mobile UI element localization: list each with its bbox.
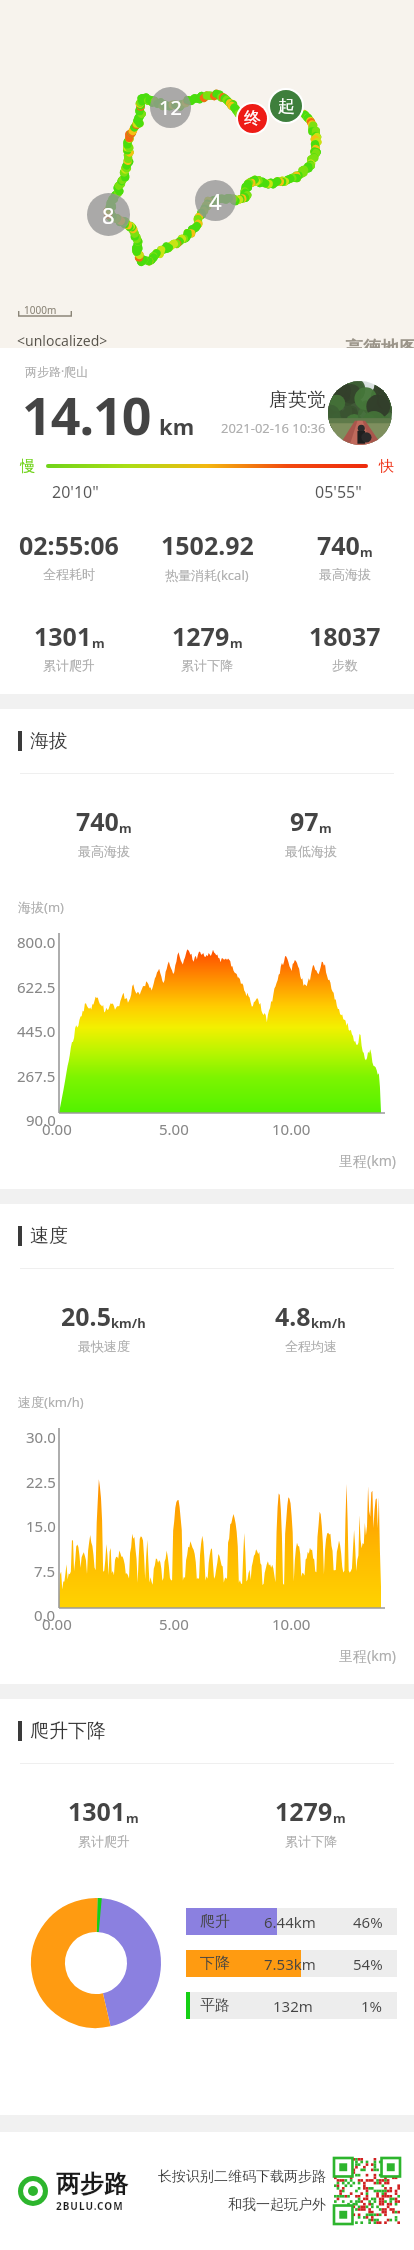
staticText: 20'10" xyxy=(52,481,99,503)
staticText: 高德地图 xyxy=(345,337,414,360)
staticText: 4 xyxy=(209,186,222,216)
staticText: 累计下降 xyxy=(285,1833,337,1849)
staticText: 里程(km) xyxy=(339,1646,396,1665)
staticText: 30.0 xyxy=(26,1427,56,1444)
staticText: 1279 xyxy=(172,619,230,653)
staticText: 800.0 xyxy=(17,932,56,949)
staticText: 2021-02-16 10:36 xyxy=(221,419,326,437)
staticText: 97 xyxy=(290,804,319,838)
staticText: 54% xyxy=(353,1954,383,1974)
staticText: 18037 xyxy=(309,619,381,653)
staticText: 速度(km/h) xyxy=(18,1393,84,1411)
staticText: 最高海拔 xyxy=(319,566,371,582)
staticText: 22.5 xyxy=(26,1472,56,1489)
staticText: m xyxy=(333,1809,346,1827)
staticText: 长按识别二维码下载两步路 xyxy=(158,2168,326,2186)
staticText: 20.5 xyxy=(61,1299,111,1333)
staticText: m xyxy=(360,543,373,561)
staticText: 爬升 xyxy=(200,1912,230,1931)
staticText: 下降 xyxy=(200,1954,230,1973)
button[interactable]: 下降 xyxy=(186,1950,397,1977)
staticText: 05'55" xyxy=(315,481,362,503)
staticText: 累计爬升 xyxy=(43,657,95,673)
staticText: 海拔(m) xyxy=(18,898,64,916)
staticText: 445.0 xyxy=(17,1021,56,1038)
staticText: 7.5 xyxy=(34,1561,56,1578)
button[interactable]: 平路 xyxy=(186,1992,397,2019)
staticText: 2BULU.COM xyxy=(56,2199,124,2213)
button[interactable]: 速度 xyxy=(18,1204,414,1268)
staticText: 6.44km xyxy=(264,1912,316,1932)
staticText: 最快速度 xyxy=(78,1338,130,1354)
staticText: 全程耗时 xyxy=(43,566,95,582)
staticText: 7.53km xyxy=(264,1954,316,1974)
button[interactable]: 终 xyxy=(238,104,267,133)
staticText: m xyxy=(319,819,332,837)
button[interactable]: User avatar xyxy=(328,381,392,445)
staticText: 10.00 xyxy=(272,1119,311,1139)
staticText: 5.00 xyxy=(159,1614,189,1634)
button[interactable]: 起 xyxy=(270,90,302,122)
staticText: 90.0 xyxy=(26,1110,56,1127)
staticText: 0.00 xyxy=(42,1614,72,1634)
staticText: 全程均速 xyxy=(285,1338,337,1354)
staticText: 海拔 xyxy=(30,729,68,753)
staticText: 1502.92 xyxy=(161,528,254,562)
staticText: 4.8 xyxy=(275,1299,311,1333)
button[interactable]: Kilometre marker 12 xyxy=(150,87,191,128)
staticText: 267.5 xyxy=(17,1066,56,1083)
button[interactable]: 爬升下降 xyxy=(18,1699,414,1763)
button[interactable]: Kilometre marker 4 xyxy=(195,180,236,221)
staticText: 唐英觉 xyxy=(269,388,326,412)
staticText: 15.0 xyxy=(26,1516,56,1533)
staticText: 两步路 xyxy=(56,2169,128,2199)
button[interactable]: 爬升 xyxy=(186,1908,397,1935)
staticText: m xyxy=(92,634,105,652)
staticText: 02:55:06 xyxy=(19,528,119,562)
staticText: 两步路·爬山 xyxy=(25,363,89,379)
staticText: km xyxy=(159,411,195,441)
staticText: 快 xyxy=(379,457,394,476)
staticText: 和我一起玩户外 xyxy=(228,2196,326,2214)
staticText: 8 xyxy=(102,200,115,230)
staticText: m xyxy=(119,819,132,837)
staticText: 慢 xyxy=(20,457,35,476)
staticText: 爬升下降 xyxy=(30,1719,106,1743)
staticText: km/h xyxy=(311,1314,346,1332)
staticText: 0.00 xyxy=(42,1119,72,1139)
staticText: 热量消耗(kcal) xyxy=(165,566,249,584)
staticText: 1279 xyxy=(275,1794,333,1828)
staticText: 1301 xyxy=(68,1794,126,1828)
staticText: m xyxy=(230,634,243,652)
staticText: 5.00 xyxy=(159,1119,189,1139)
staticText: 累计下降 xyxy=(181,657,233,673)
staticText: <unlocalized> xyxy=(17,331,108,350)
staticText: 14.10 xyxy=(22,379,151,450)
staticText: m xyxy=(126,1809,139,1827)
staticText: 12 xyxy=(159,94,182,121)
staticText: 10.00 xyxy=(272,1614,311,1634)
staticText: km/h xyxy=(111,1314,146,1332)
button[interactable]: Kilometre marker 8 xyxy=(87,193,130,236)
staticText: 里程(km) xyxy=(339,1151,396,1170)
staticText: 速度 xyxy=(30,1224,68,1248)
staticText: 最低海拔 xyxy=(285,843,337,859)
staticText: 平路 xyxy=(200,1996,230,2015)
staticText: 起 xyxy=(278,96,295,117)
staticText: 132m xyxy=(273,1996,313,2016)
staticText: 最高海拔 xyxy=(78,843,130,859)
staticText: 累计爬升 xyxy=(78,1833,130,1849)
staticText: 622.5 xyxy=(17,977,56,994)
staticText: 1301 xyxy=(34,619,92,653)
staticText: 1000m xyxy=(24,303,57,317)
staticText: 步数 xyxy=(332,657,358,673)
button[interactable]: 海拔 xyxy=(18,709,414,773)
staticText: 46% xyxy=(353,1912,383,1932)
staticText: 740 xyxy=(317,528,360,562)
staticText: 1% xyxy=(361,1996,383,2016)
staticText: 0.0 xyxy=(34,1605,56,1622)
staticText: 740 xyxy=(76,804,119,838)
staticText: 终 xyxy=(244,108,261,129)
